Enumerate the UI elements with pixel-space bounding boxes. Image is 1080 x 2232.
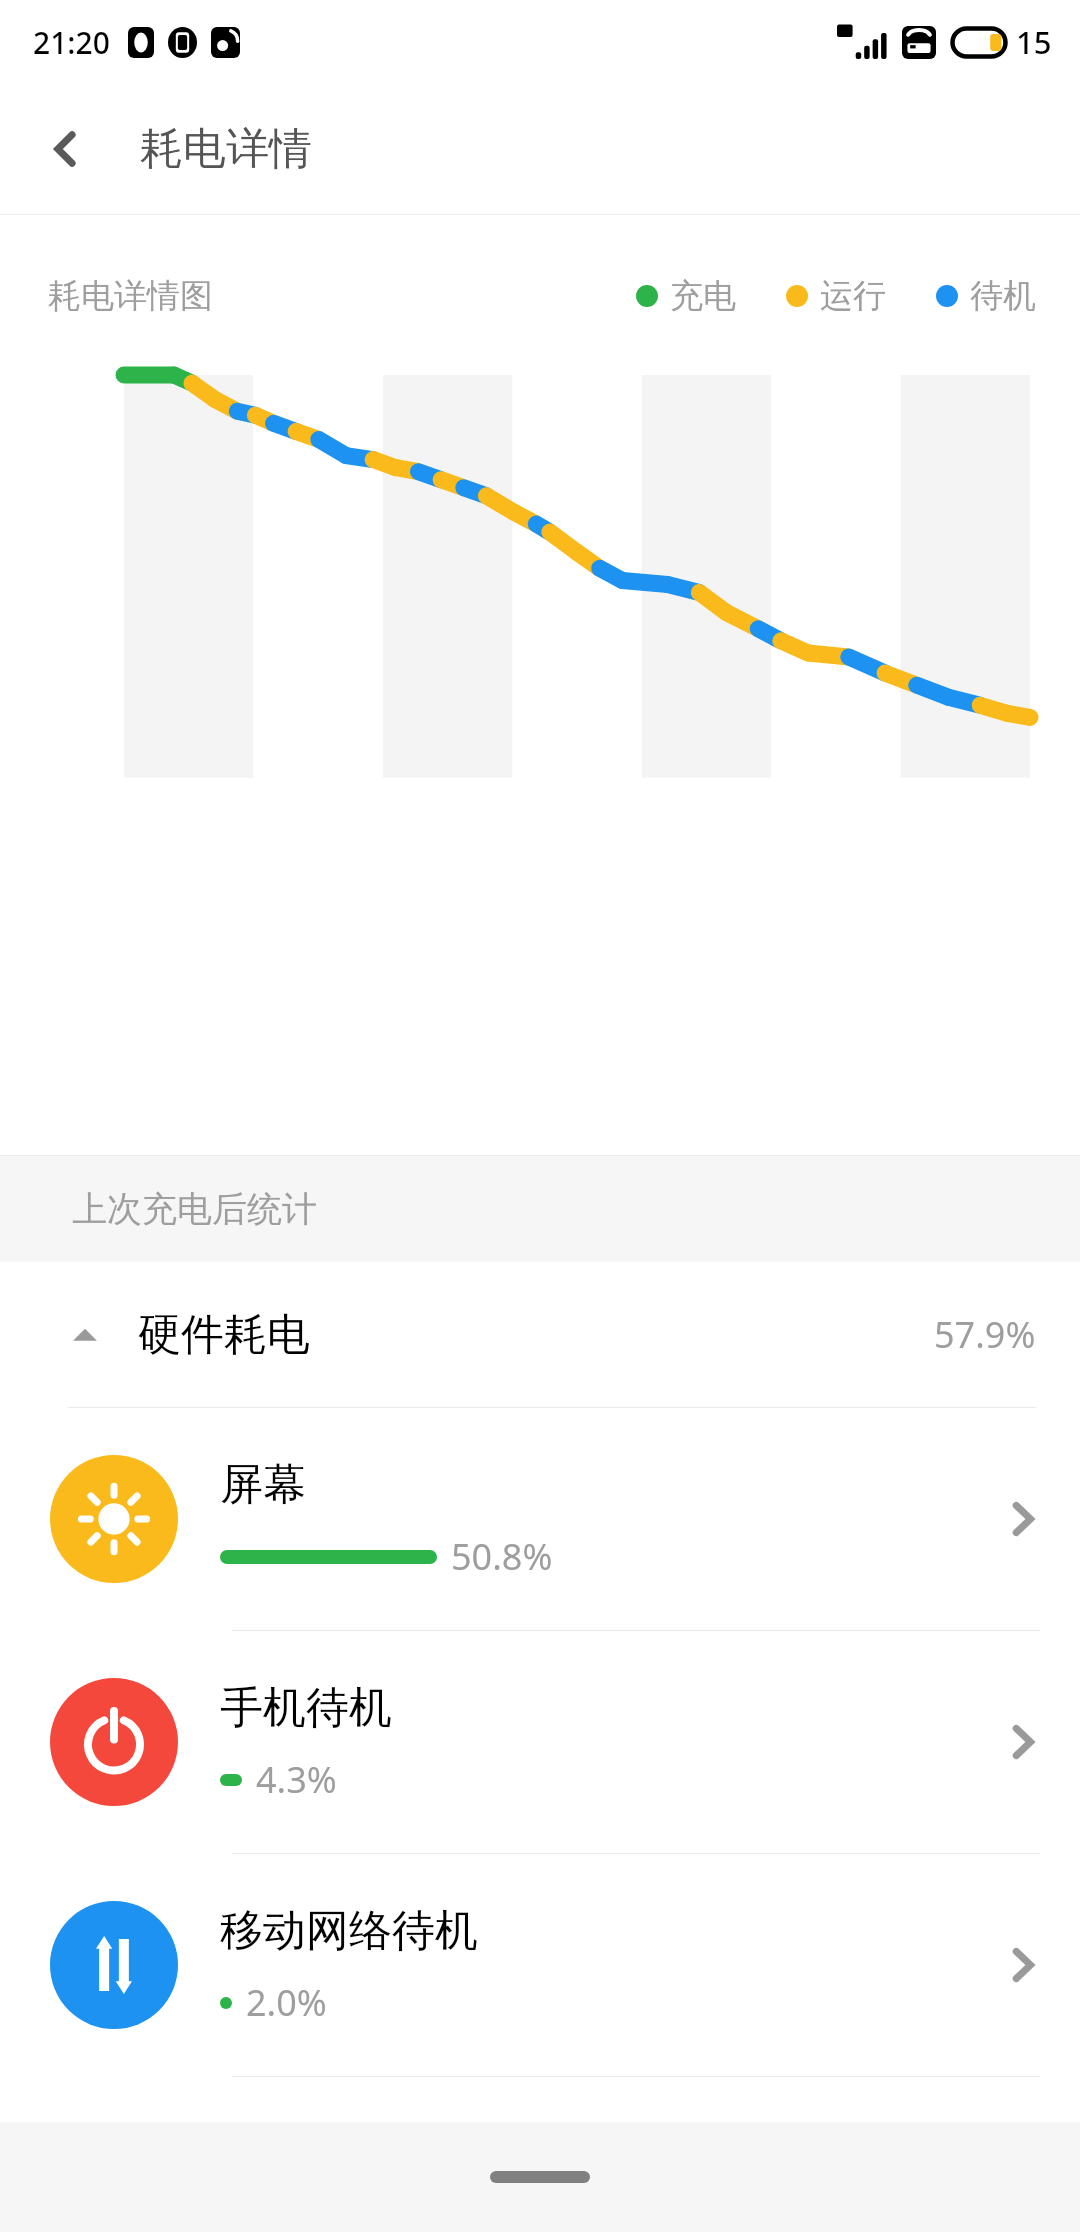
other: Phone idle battery usage [50,1678,178,1806]
button[interactable]: Screen battery usage [0,1408,1080,1630]
staticText: 57.9% [934,1310,1036,1359]
other: Screen battery usage [50,1455,178,1583]
staticText: 运行 [820,275,886,317]
button[interactable]: Back [28,111,104,187]
staticText: 21:20 [33,22,110,63]
button[interactable]: 硬件耗电 [0,1262,1080,1407]
staticText: 屏幕 [220,1458,306,1512]
staticText: 上次充电后统计 [72,1187,317,1231]
button[interactable]: Mobile network idle battery usage [0,1854,1080,2076]
staticText: 充电 [670,275,736,317]
other: Mobile network idle battery usage [50,1901,178,2029]
staticText: 耗电详情 [140,122,312,176]
staticText: 移动网络待机 [220,1904,478,1958]
staticText: 50.8% [451,1532,553,1581]
staticText: 15 [1016,21,1052,63]
staticText: 待机 [970,275,1036,317]
staticText: 手机待机 [220,1681,392,1735]
staticText: 2.0% [246,1978,327,2027]
staticText: 4.3% [256,1755,337,1804]
staticText: 硬件耗电 [138,1308,310,1362]
staticText: 耗电详情图 [48,275,213,317]
button[interactable]: Phone idle battery usage [0,1631,1080,1853]
